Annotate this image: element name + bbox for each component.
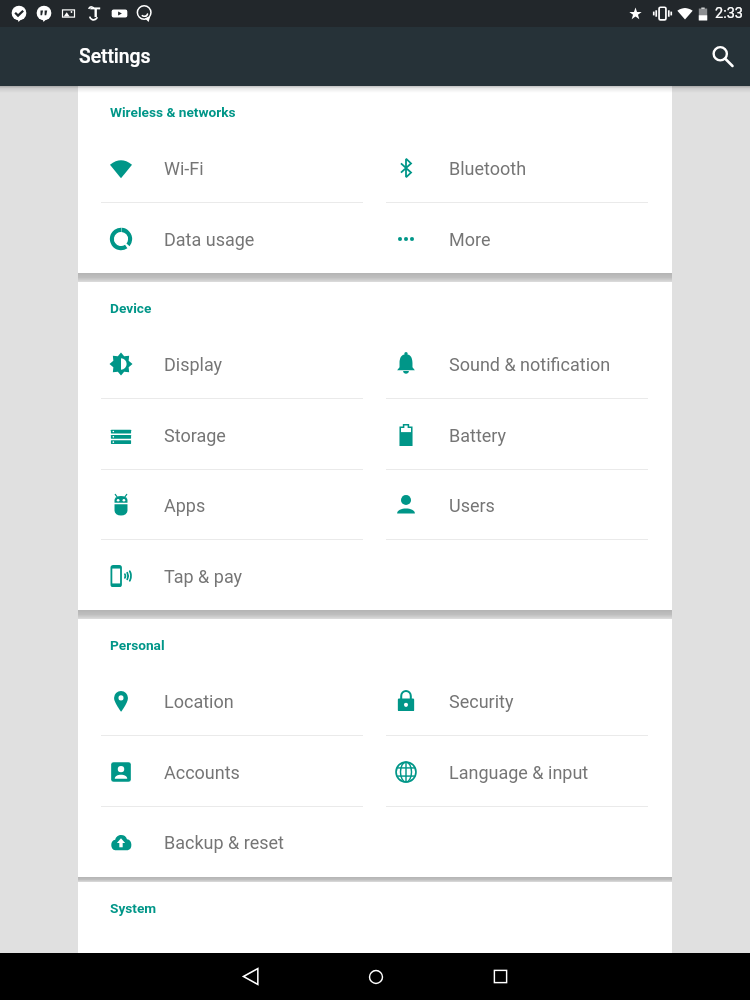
button[interactable]: Security	[363, 665, 648, 736]
staticText: More	[449, 229, 491, 250]
staticText: Users	[449, 495, 495, 516]
staticText: Bluetooth	[449, 158, 527, 179]
staticText: Device	[110, 300, 152, 316]
staticText: Data usage	[164, 229, 255, 250]
button[interactable]: Users	[363, 469, 648, 540]
staticText: Backup & reset	[164, 832, 284, 853]
button[interactable]: Language & input	[363, 736, 648, 807]
staticText: Personal	[110, 637, 165, 653]
button[interactable]: Recents	[438, 953, 563, 1000]
button[interactable]: Data usage	[78, 203, 363, 274]
staticText: Accounts	[164, 762, 240, 783]
staticText: Security	[449, 691, 514, 712]
staticText: Wi-Fi	[164, 158, 204, 179]
button[interactable]: Bluetooth	[363, 132, 648, 203]
staticText: Settings	[79, 45, 151, 68]
button[interactable]: Location	[78, 665, 363, 736]
button[interactable]: Display	[78, 328, 363, 399]
staticText: Location	[164, 691, 234, 712]
button[interactable]: More	[363, 203, 648, 274]
staticText: Tap & pay	[164, 566, 243, 587]
staticText: System	[110, 900, 157, 916]
button[interactable]: Tap & pay	[78, 540, 363, 611]
button[interactable]: Back	[188, 953, 313, 1000]
staticText: Display	[164, 354, 223, 375]
staticText: 2:33	[715, 5, 743, 22]
button[interactable]: Battery	[363, 399, 648, 470]
staticText: Sound & notification	[449, 354, 611, 375]
staticText: Language & input	[449, 762, 589, 783]
button[interactable]: Apps	[78, 469, 363, 540]
staticText: Wireless & networks	[110, 104, 236, 120]
button[interactable]: Accounts	[78, 736, 363, 807]
button[interactable]: Backup & reset	[78, 806, 363, 877]
staticText: Battery	[449, 425, 507, 446]
staticText: Apps	[164, 495, 206, 516]
staticText: Storage	[164, 425, 226, 446]
button[interactable]: Search	[698, 35, 742, 79]
button[interactable]: Wi-Fi	[78, 132, 363, 203]
button[interactable]: Home	[313, 953, 438, 1000]
button[interactable]: Sound & notification	[363, 328, 648, 399]
button[interactable]: Storage	[78, 399, 363, 470]
